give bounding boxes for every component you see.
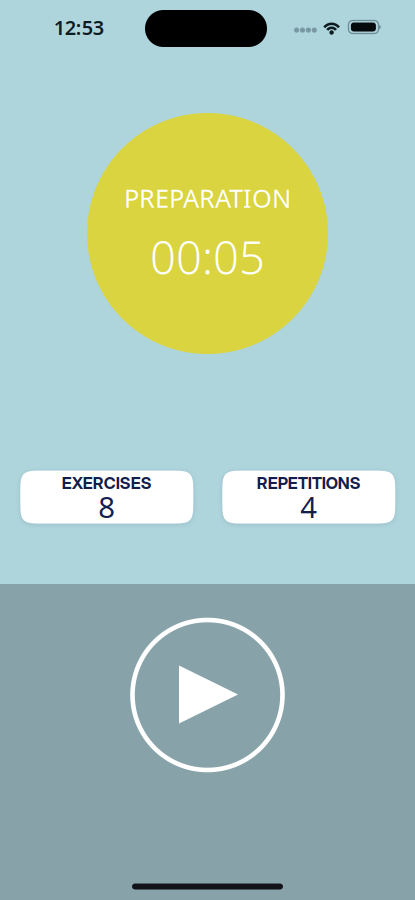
staticText: PREPARATION [124,181,291,215]
staticText: 12:53 [54,14,104,40]
button[interactable]: EXERCISES [20,471,193,524]
staticText: EXERCISES [62,473,152,493]
button[interactable]: REPETITIONS [222,471,395,524]
staticText: 4 [300,487,317,526]
button[interactable]: Start workout [130,618,284,772]
staticText: 8 [98,487,115,526]
button[interactable]: PREPARATION [87,113,328,354]
staticText: 00:05 [150,227,265,287]
staticText: REPETITIONS [257,473,361,493]
